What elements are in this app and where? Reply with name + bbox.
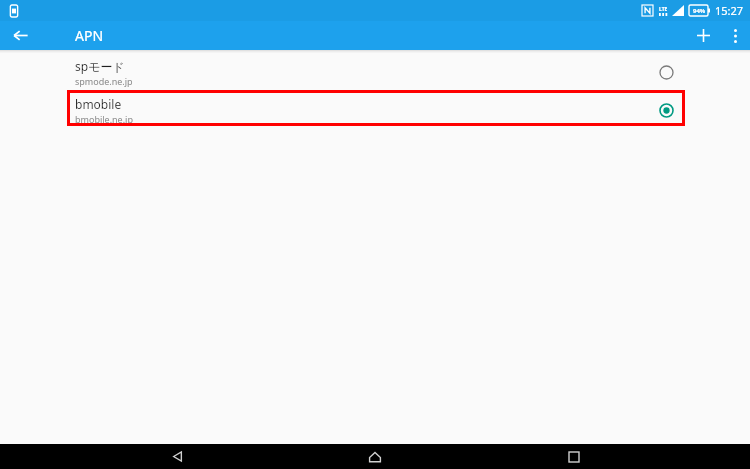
button[interactable]: Home <box>353 444 397 469</box>
button[interactable]: bmobile <box>0 91 750 129</box>
button[interactable]: Back <box>155 444 199 469</box>
button[interactable]: spモード <box>0 53 750 91</box>
staticText: bmobile <box>75 96 122 112</box>
staticText: spmode.ne.jp <box>75 75 133 87</box>
button[interactable]: More options <box>720 21 750 50</box>
button[interactable]: Recents <box>552 444 596 469</box>
staticText: bmobile.ne.jp <box>75 113 133 125</box>
button[interactable]: Add APN <box>686 21 720 50</box>
staticText: spモード <box>75 58 125 74</box>
staticText: 15:27 <box>715 3 744 18</box>
staticText: 94% <box>693 7 706 15</box>
staticText: LTE <box>659 6 668 13</box>
button[interactable]: Back <box>0 21 40 50</box>
staticText: APN <box>75 26 104 45</box>
